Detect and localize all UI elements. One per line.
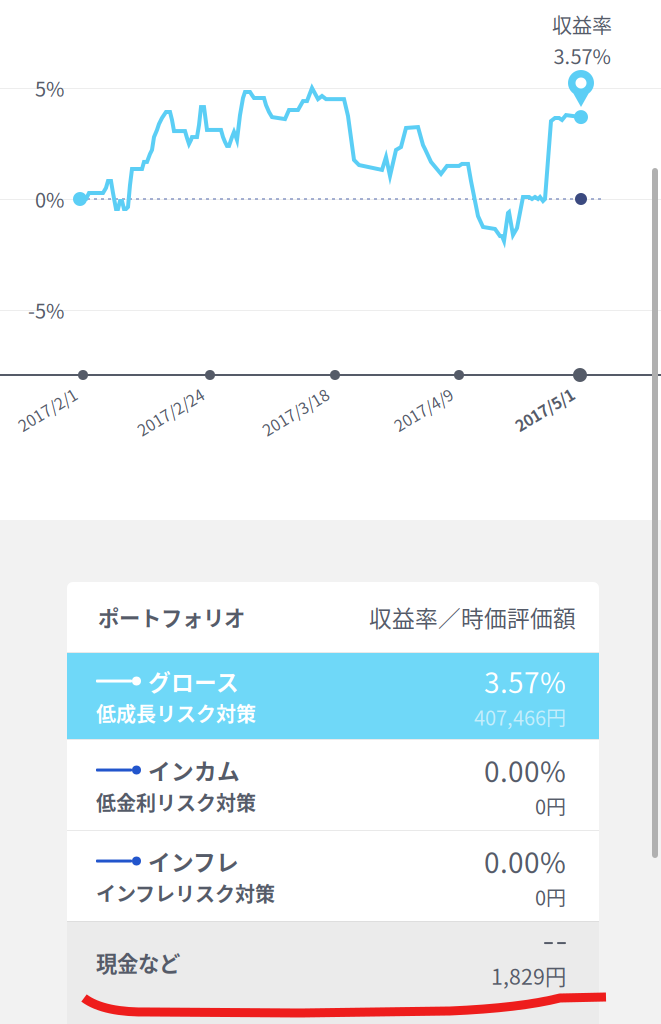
staticText: 収益率／時価評価額 [369, 601, 576, 633]
staticText: 2017/4/9 [380, 382, 446, 406]
staticText: 低金利リスク対策 [96, 787, 256, 816]
staticText: 1,829円 [491, 960, 566, 991]
staticText: 407,466円 [474, 702, 566, 731]
button[interactable]: インカム [67, 740, 599, 830]
staticText: 2017/2/24 [122, 382, 197, 406]
button[interactable]: 現金など [67, 922, 599, 1024]
staticText: 2017/2/1 [4, 382, 70, 406]
staticText: 5% [35, 73, 64, 102]
staticText: インカム [148, 754, 240, 786]
button[interactable]: グロース [67, 653, 599, 739]
staticText: 0.00% [484, 750, 566, 790]
staticText: 0.00% [484, 841, 566, 881]
staticText: 現金など [96, 947, 180, 978]
staticText: 2017/5/1 [501, 382, 567, 406]
staticText: -5% [28, 295, 64, 324]
button[interactable]: インフレ [67, 831, 599, 921]
staticText: インフレ [148, 845, 239, 877]
staticText: インフレリスク対策 [96, 878, 275, 907]
staticText: グロース [148, 665, 239, 697]
staticText: 収益率 [552, 10, 612, 39]
staticText: 3.57% [484, 661, 566, 701]
staticText: ポートフォリオ [98, 602, 245, 632]
staticText: 2017/3/18 [247, 382, 322, 406]
staticText: 低成長リスク対策 [96, 698, 256, 727]
staticText: 0% [35, 184, 64, 213]
staticText: 3.57% [553, 41, 610, 70]
staticText: 0円 [535, 791, 566, 820]
staticText: 0円 [535, 882, 566, 911]
